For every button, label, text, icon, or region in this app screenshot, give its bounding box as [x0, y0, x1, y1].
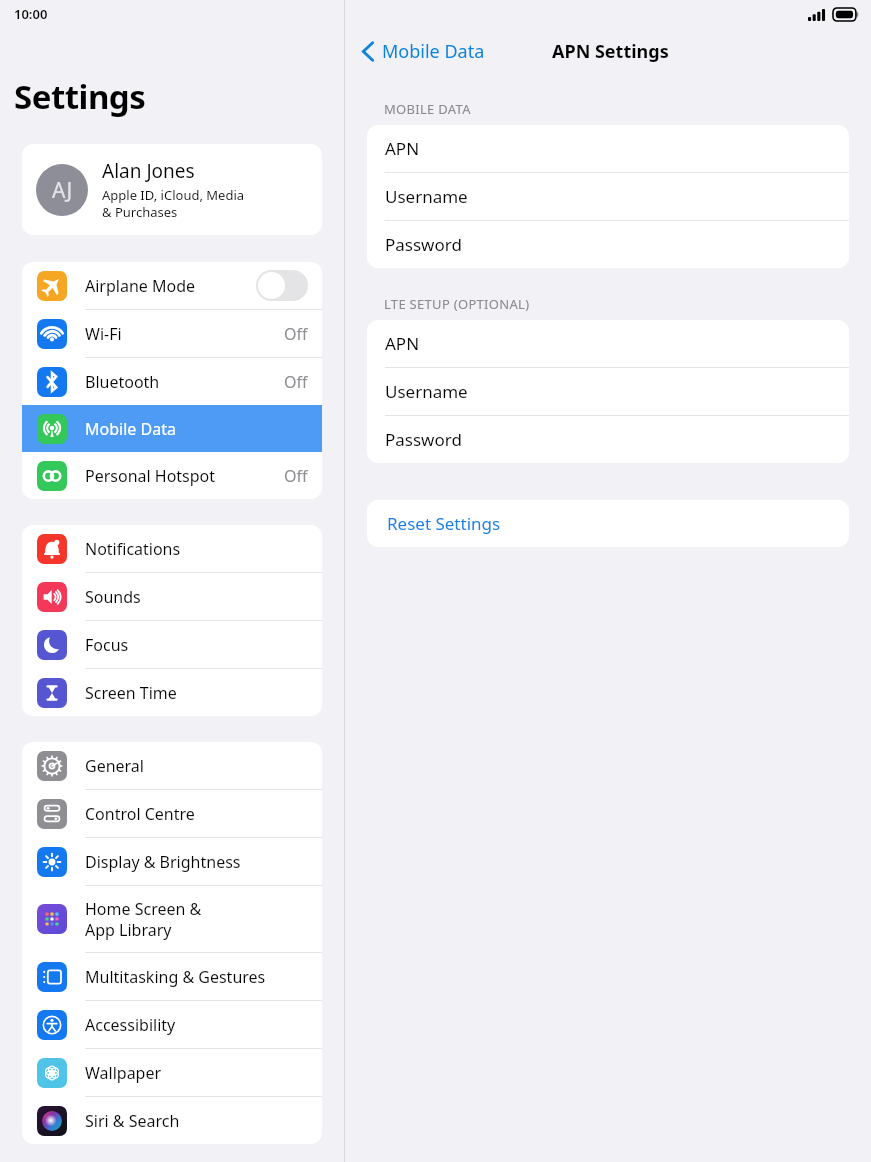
staticText: Wi-Fi	[85, 323, 284, 345]
staticText: APN	[385, 137, 420, 160]
button[interactable]: Airplane Mode	[22, 262, 322, 309]
button[interactable]: Mobile Data	[22, 405, 322, 452]
staticText: Accessibility	[85, 1014, 308, 1036]
staticText: Reset Settings	[387, 512, 501, 535]
staticText: Password	[385, 428, 462, 451]
button[interactable]: Siri & Search	[22, 1097, 322, 1144]
button[interactable]: Username	[367, 368, 849, 415]
staticText: Settings	[14, 74, 146, 119]
staticText: Off	[284, 465, 308, 487]
button[interactable]: Personal Hotspot	[22, 452, 322, 499]
staticText: Wallpaper	[85, 1062, 308, 1084]
button[interactable]: Bluetooth	[22, 358, 322, 405]
button[interactable]: Username	[367, 173, 849, 220]
staticText: Home Screen & App Library	[85, 898, 308, 941]
button[interactable]: AJ	[22, 144, 322, 235]
button[interactable]: Reset Settings	[367, 500, 849, 547]
staticText: Username	[385, 380, 468, 403]
button[interactable]: Accessibility	[22, 1001, 322, 1048]
staticText: Alan Jones	[102, 158, 195, 184]
staticText: Display & Brightness	[85, 851, 308, 873]
button[interactable]: Multitasking & Gestures	[22, 953, 322, 1000]
button[interactable]: Notifications	[22, 525, 322, 572]
button[interactable]: Home Screen & App Library	[22, 886, 322, 952]
staticText: Bluetooth	[85, 371, 284, 393]
staticText: Password	[385, 233, 462, 256]
staticText: Mobile Data	[85, 418, 308, 440]
button[interactable]: General	[22, 742, 322, 789]
button[interactable]: Focus	[22, 621, 322, 668]
staticText: Screen Time	[85, 682, 308, 704]
staticText: Off	[284, 323, 308, 345]
button[interactable]: Control Centre	[22, 790, 322, 837]
staticText: Control Centre	[85, 803, 308, 825]
button[interactable]: Password	[367, 221, 849, 268]
button[interactable]: APN	[367, 125, 849, 172]
staticText: APN	[385, 332, 420, 355]
staticText: Focus	[85, 634, 308, 656]
button[interactable]: Sounds	[22, 573, 322, 620]
staticText: Notifications	[85, 538, 308, 560]
staticText: Apple ID, iCloud, Media & Purchases	[102, 186, 245, 221]
staticText: Off	[284, 371, 308, 393]
button[interactable]: Mobile Data	[357, 35, 490, 68]
staticText: Username	[385, 185, 468, 208]
button[interactable]: Wallpaper	[22, 1049, 322, 1096]
button[interactable]: Airplane Mode toggle	[256, 270, 308, 301]
staticText: Airplane Mode	[85, 275, 256, 297]
staticText: Personal Hotspot	[85, 465, 284, 487]
staticText: AJ	[52, 176, 73, 205]
button[interactable]: Password	[367, 416, 849, 463]
staticText: MOBILE DATA	[384, 100, 471, 118]
staticText: LTE SETUP (OPTIONAL)	[384, 295, 530, 313]
staticText: APN Settings	[552, 39, 669, 64]
button[interactable]: Wi-Fi	[22, 310, 322, 357]
button[interactable]: APN	[367, 320, 849, 367]
staticText: Multitasking & Gestures	[85, 966, 308, 988]
button[interactable]: Screen Time	[22, 669, 322, 716]
staticText: General	[85, 755, 308, 777]
staticText: Mobile Data	[382, 39, 485, 64]
staticText: 10:00	[14, 5, 48, 23]
staticText: Siri & Search	[85, 1110, 308, 1132]
button[interactable]: Display & Brightness	[22, 838, 322, 885]
staticText: Sounds	[85, 586, 308, 608]
